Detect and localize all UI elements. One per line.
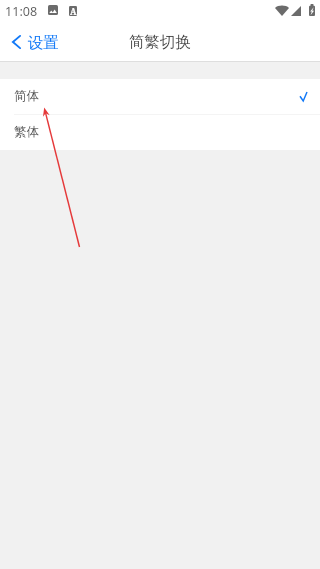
staticText: 繁体 (14, 124, 39, 140)
staticText: 简繁切换 (129, 32, 191, 51)
button[interactable]: 繁体 (0, 115, 320, 150)
staticText: A (70, 6, 77, 16)
other: 已选中 (300, 92, 307, 101)
button[interactable]: 简体 (0, 79, 320, 114)
staticText: 设置 (28, 33, 59, 52)
staticText: 11:08 (5, 3, 38, 20)
button[interactable]: 返回 (0, 22, 70, 62)
staticText: 简体 (14, 88, 39, 104)
other: 返回 (12, 35, 21, 49)
